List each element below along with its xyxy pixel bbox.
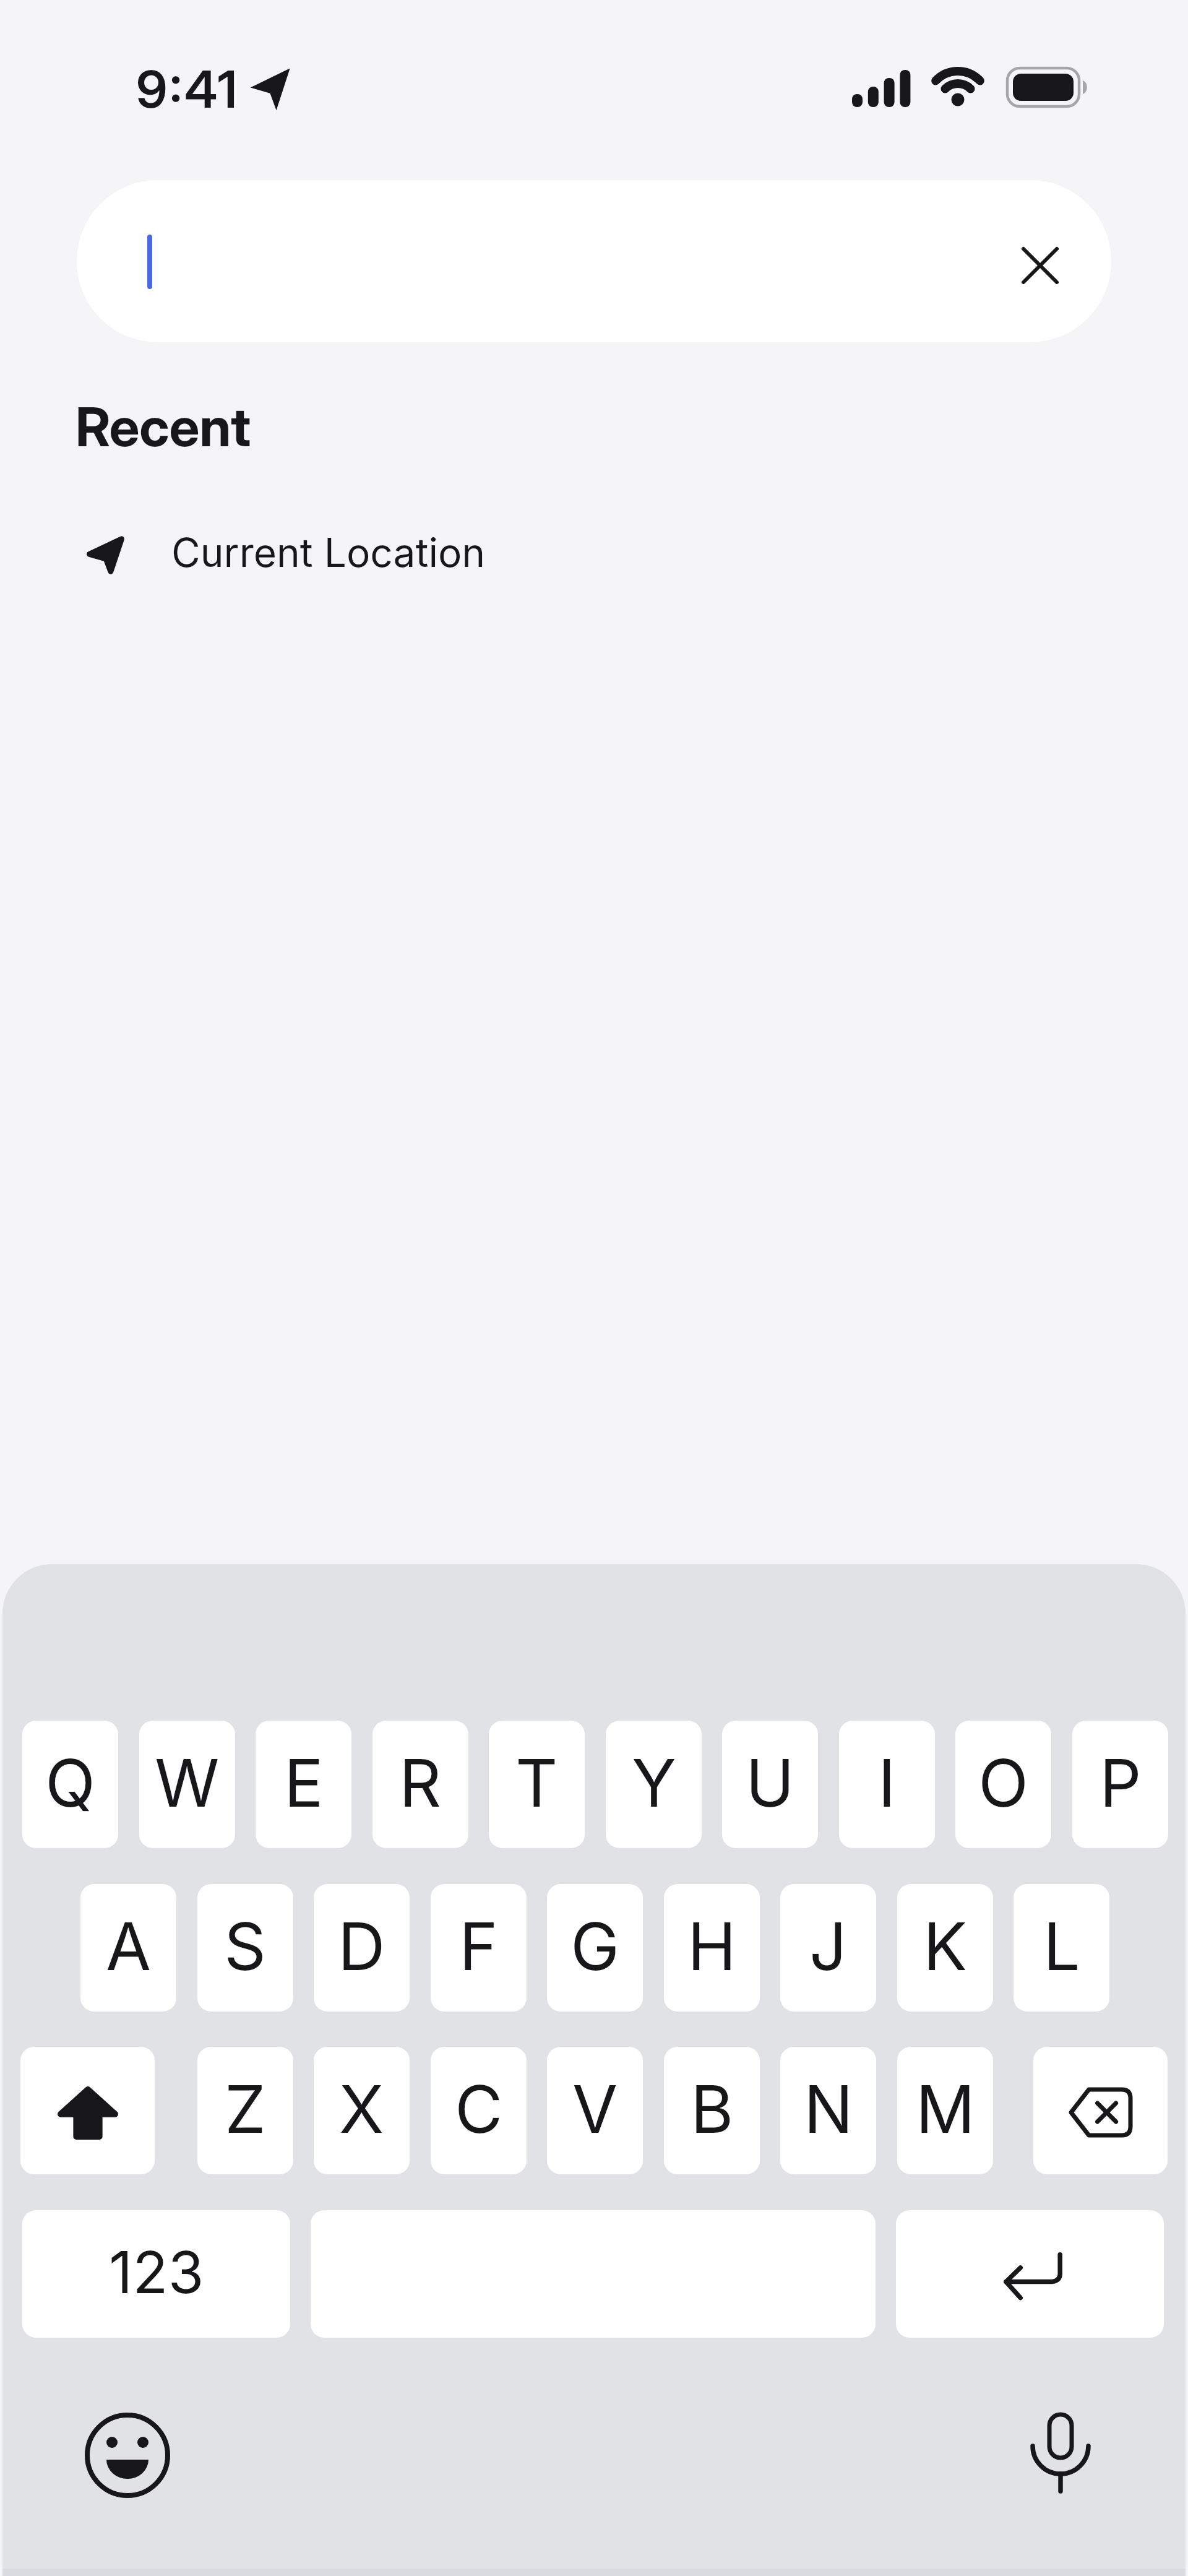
staticText: J <box>809 1906 847 1986</box>
staticText: I <box>878 1743 896 1822</box>
button[interactable] <box>20 2047 155 2174</box>
button[interactable]: A <box>80 1884 176 2012</box>
staticText: N <box>804 2069 853 2148</box>
staticText: B <box>691 2069 734 2148</box>
button[interactable] <box>77 180 1111 342</box>
button[interactable]: Q <box>22 1721 118 1848</box>
button[interactable]: L <box>1014 1884 1109 2012</box>
button[interactable]: Current Location <box>64 511 547 598</box>
button[interactable]: O <box>955 1721 1051 1848</box>
button[interactable]: P <box>1072 1721 1168 1848</box>
button[interactable]: Z <box>197 2047 293 2174</box>
staticText: D <box>338 1906 385 1986</box>
button[interactable]: G <box>547 1884 643 2012</box>
staticText: T <box>515 1743 558 1822</box>
button[interactable]: U <box>722 1721 818 1848</box>
button[interactable] <box>1011 2406 1110 2505</box>
button[interactable]: V <box>547 2047 643 2174</box>
staticText: S <box>224 1906 267 1986</box>
staticText: U <box>746 1743 794 1822</box>
button[interactable]: I <box>839 1721 935 1848</box>
staticText: E <box>284 1743 324 1822</box>
button[interactable]: M <box>897 2047 993 2174</box>
staticText: R <box>399 1743 442 1822</box>
staticText: 9:41 <box>136 58 239 120</box>
button[interactable]: R <box>372 1721 468 1848</box>
button[interactable]: D <box>314 1884 410 2012</box>
staticText: C <box>455 2069 503 2148</box>
button[interactable]: N <box>780 2047 876 2174</box>
staticText: Recent <box>75 394 251 459</box>
button[interactable]: C <box>431 2047 527 2174</box>
staticText: G <box>570 1906 620 1986</box>
staticText: Y <box>632 1743 676 1822</box>
button[interactable]: K <box>897 1884 993 2012</box>
button[interactable] <box>1009 234 1072 297</box>
staticText: W <box>155 1743 220 1822</box>
button[interactable]: 123 <box>22 2210 290 2338</box>
button[interactable]: F <box>431 1884 527 2012</box>
button[interactable] <box>1033 2047 1168 2174</box>
staticText: M <box>916 2069 975 2148</box>
button[interactable]: Y <box>606 1721 702 1848</box>
staticText: Q <box>45 1743 96 1822</box>
staticText: L <box>1043 1906 1080 1986</box>
button[interactable]: J <box>780 1884 876 2012</box>
staticText: K <box>923 1906 968 1986</box>
button[interactable]: W <box>139 1721 235 1848</box>
staticText: X <box>339 2069 384 2148</box>
button[interactable]: T <box>489 1721 585 1848</box>
button[interactable]: S <box>197 1884 293 2012</box>
button[interactable]: E <box>256 1721 351 1848</box>
button[interactable]: X <box>314 2047 410 2174</box>
staticText: P <box>1100 1743 1142 1822</box>
button[interactable] <box>78 2406 177 2505</box>
staticText: V <box>572 2069 618 2148</box>
button[interactable]: H <box>664 1884 760 2012</box>
staticText: 123 <box>109 2237 204 2307</box>
staticText: H <box>687 1906 736 1986</box>
staticText: A <box>106 1906 152 1986</box>
staticText: F <box>459 1906 498 1986</box>
staticText: O <box>978 1743 1029 1822</box>
staticText: Current Location <box>171 529 486 576</box>
staticText: Z <box>225 2069 266 2148</box>
button[interactable]: B <box>664 2047 760 2174</box>
button[interactable] <box>896 2210 1164 2338</box>
